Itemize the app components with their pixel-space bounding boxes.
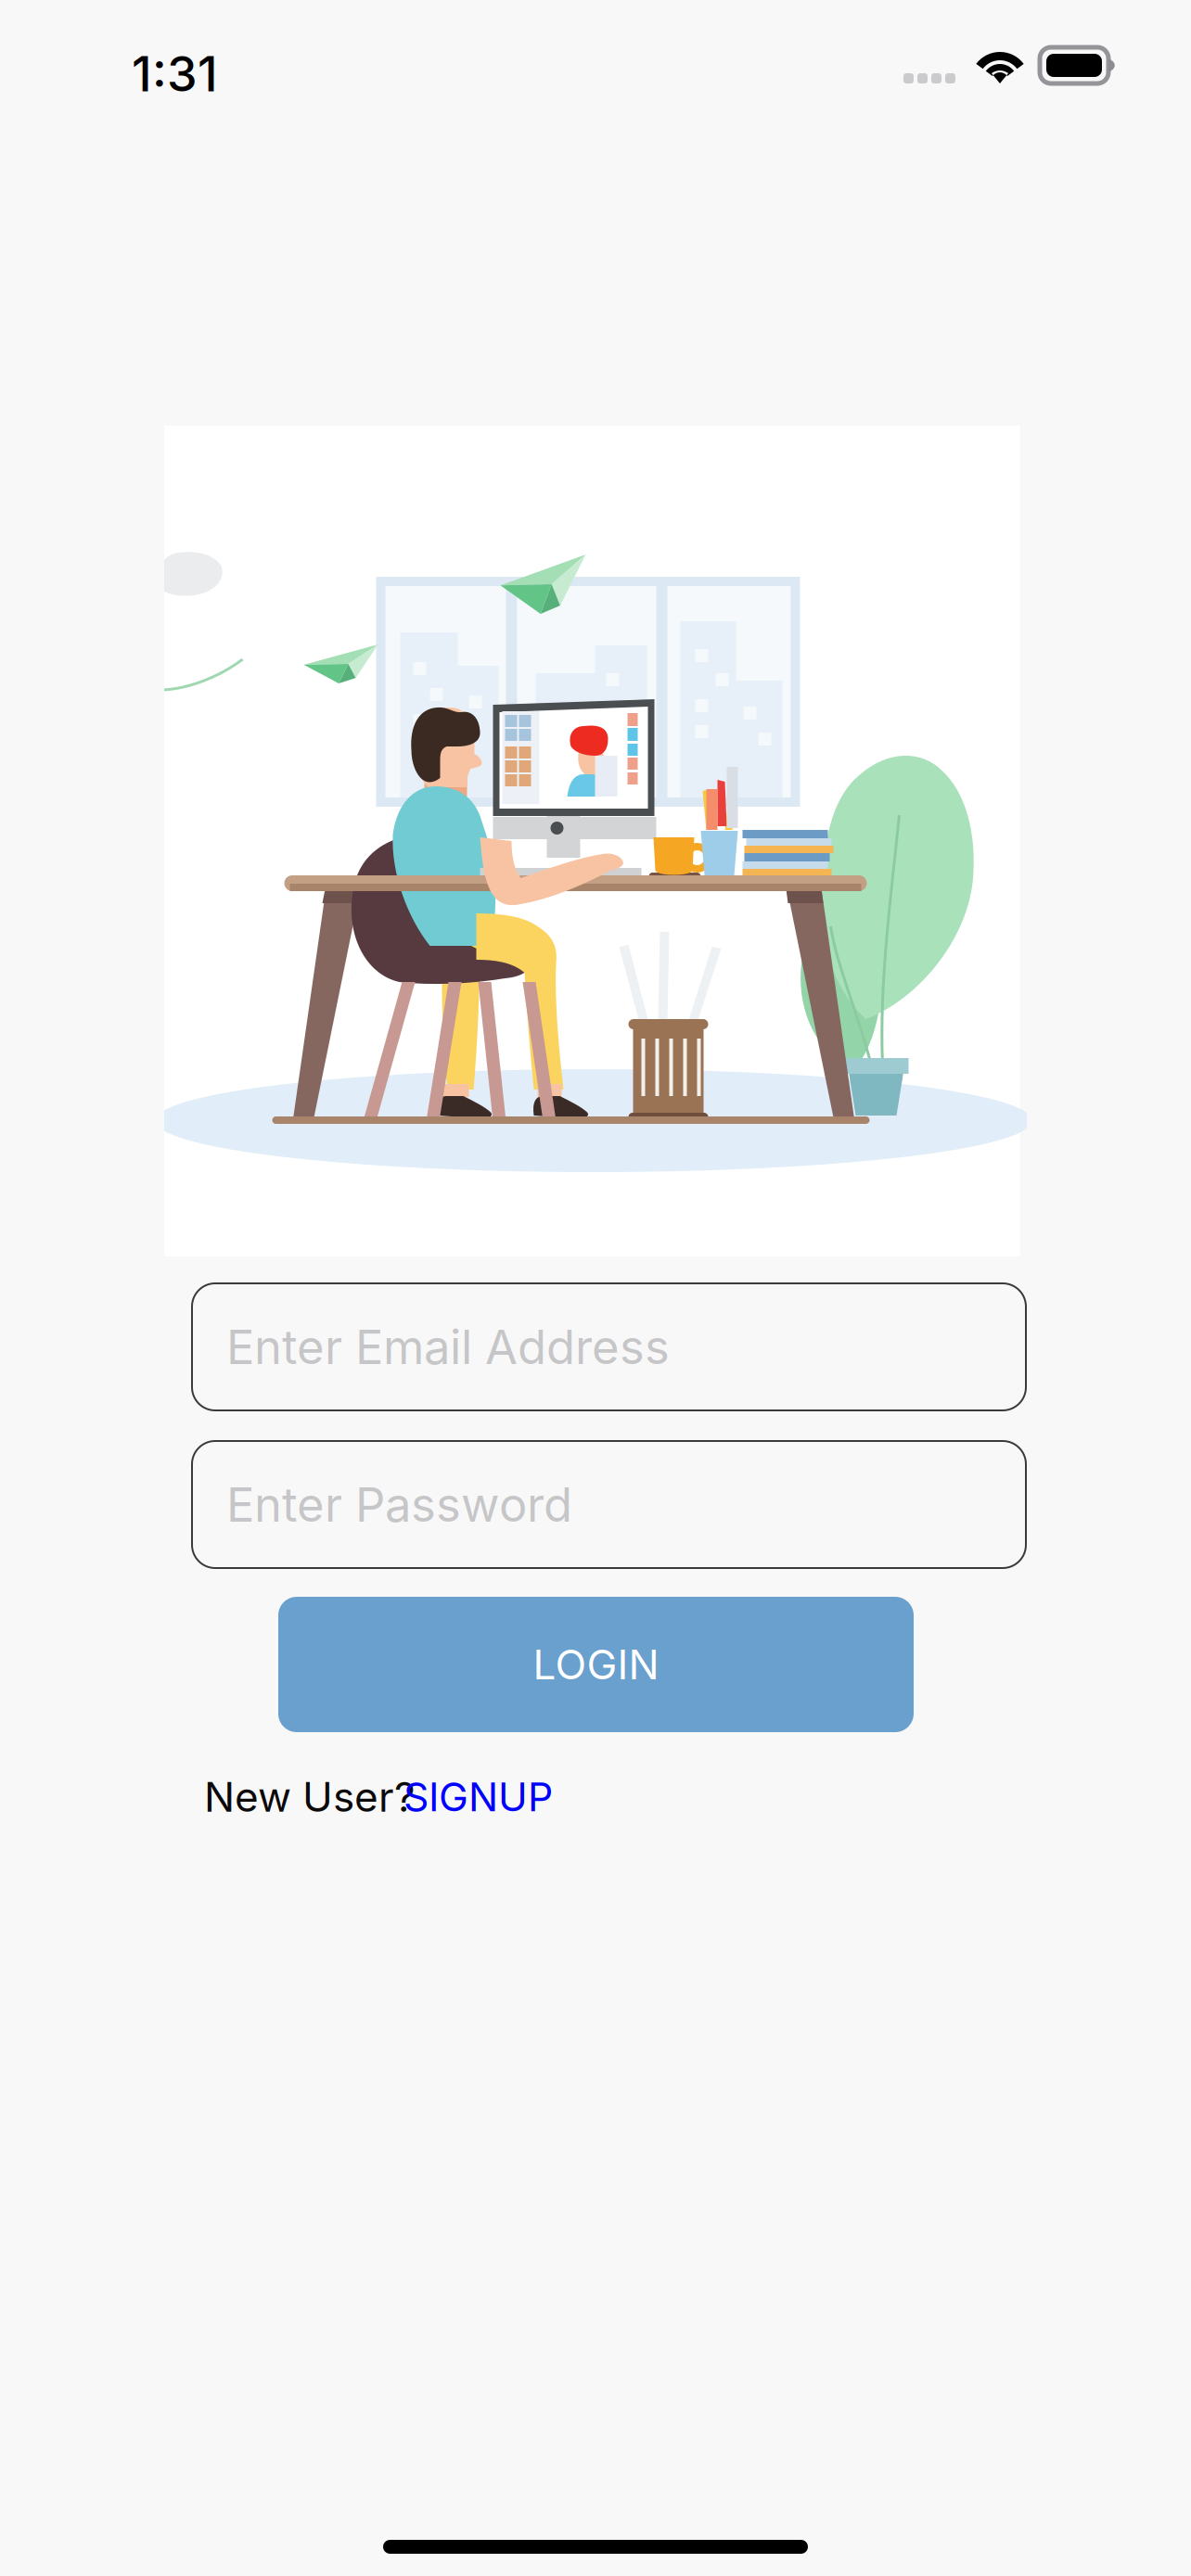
staticText: Enter Email Address bbox=[226, 1318, 670, 1375]
staticText: New User? bbox=[204, 1772, 415, 1821]
staticText: SIGNUP bbox=[403, 1773, 553, 1821]
button[interactable]: Enter Password bbox=[192, 1441, 1026, 1568]
staticText: Enter Password bbox=[226, 1476, 572, 1533]
button[interactable]: Enter Email Address bbox=[192, 1283, 1026, 1410]
button[interactable]: SIGNUP bbox=[403, 1773, 553, 1821]
staticText: 1:31 bbox=[132, 45, 218, 103]
button[interactable]: LOGIN bbox=[278, 1597, 914, 1732]
staticText: LOGIN bbox=[533, 1640, 659, 1689]
